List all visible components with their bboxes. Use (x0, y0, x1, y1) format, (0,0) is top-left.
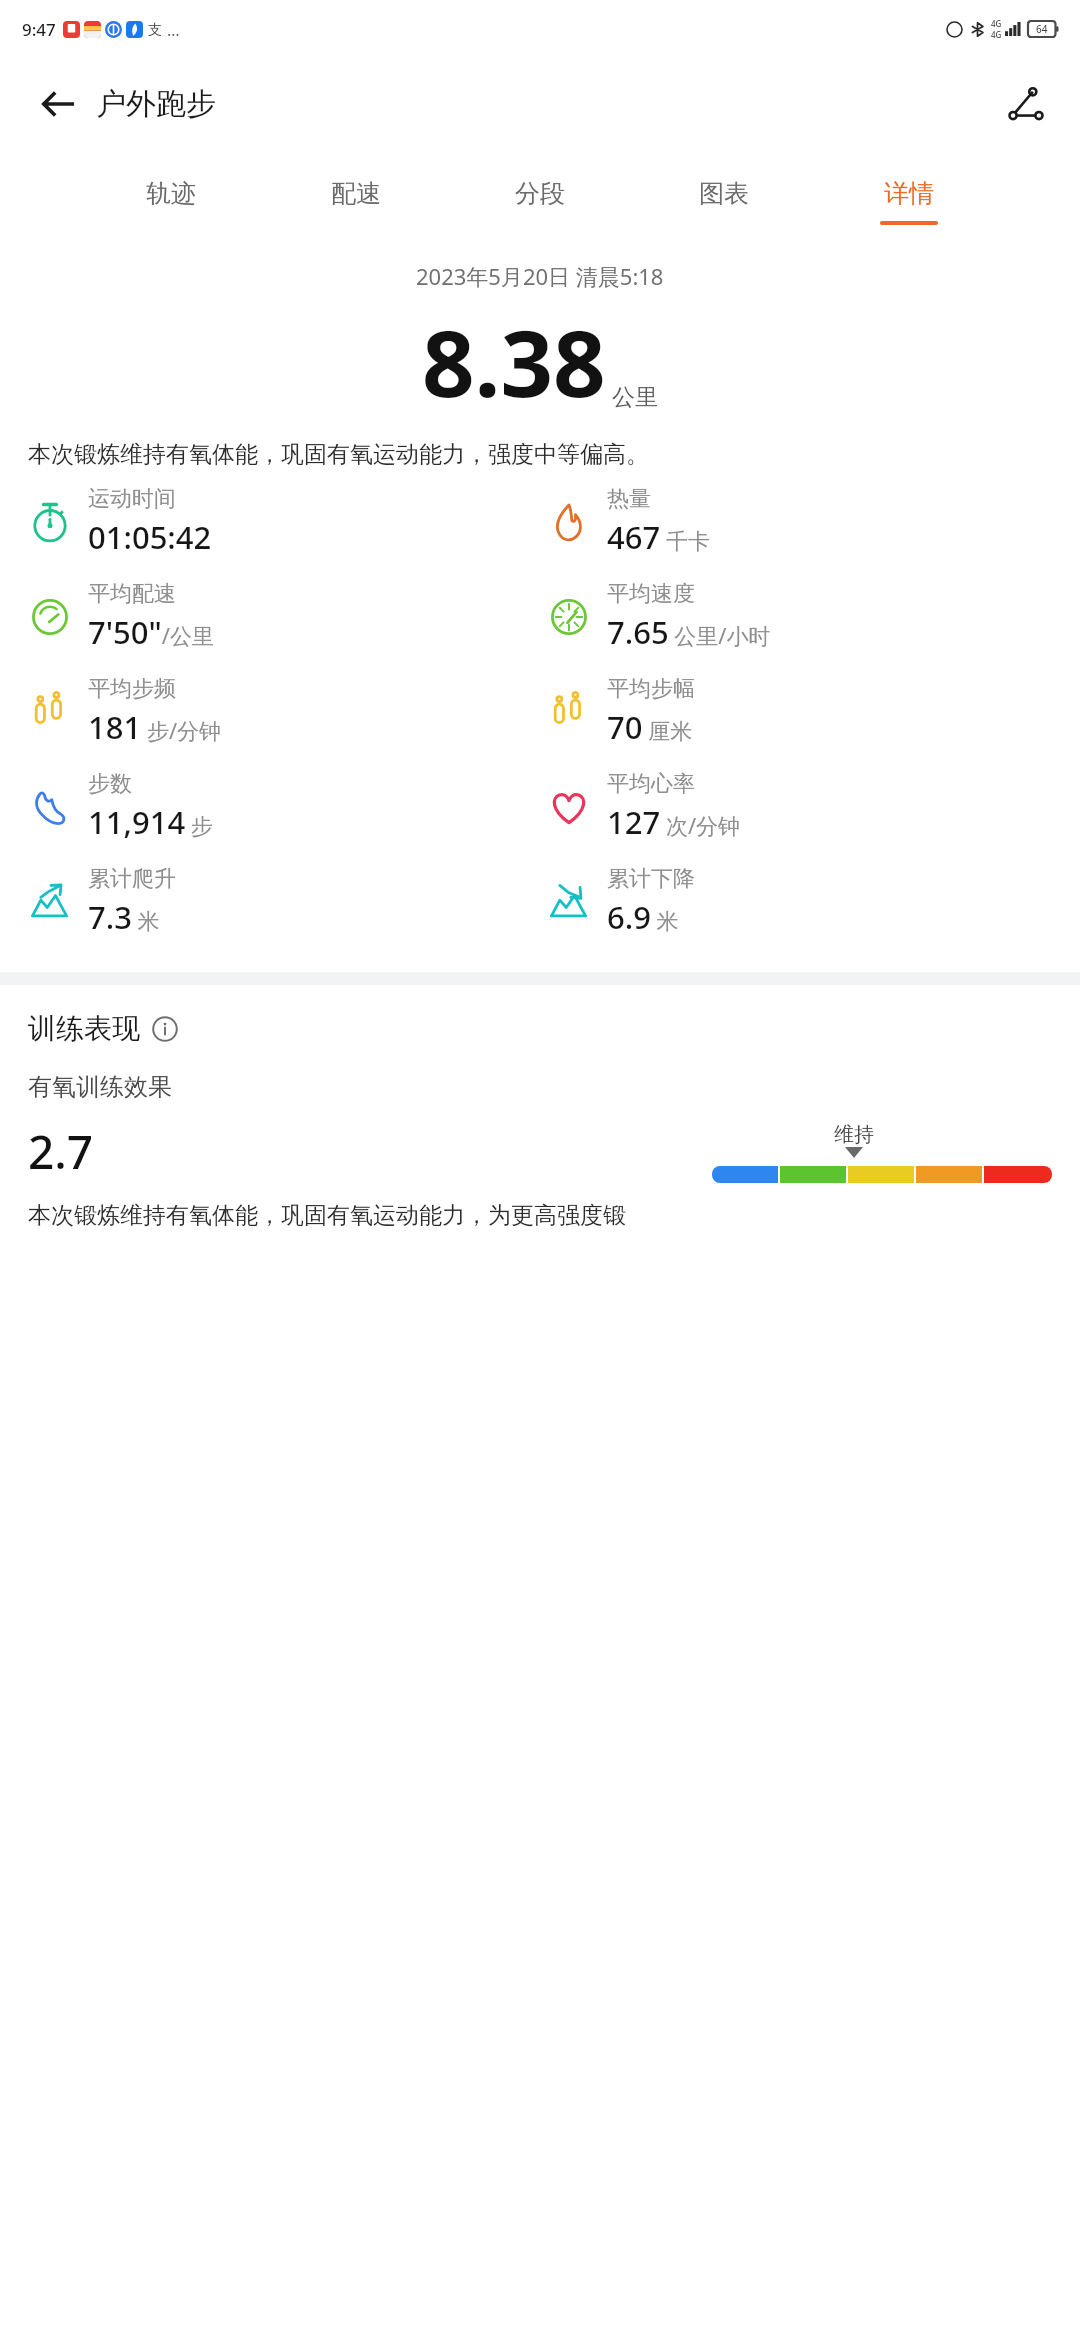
staticText: 平均步幅 (607, 675, 695, 703)
button[interactable]: 分段 (501, 172, 579, 231)
staticText: 配速 (331, 178, 381, 209)
staticText: 有氧训练效果 (28, 1072, 172, 1102)
staticText: 7.65 公里/小时 (607, 611, 771, 653)
button[interactable]: 步数 (24, 768, 543, 845)
button[interactable]: 平均速度 (543, 578, 1062, 655)
staticText: 平均速度 (607, 580, 695, 608)
staticText: 累计爬升 (88, 865, 176, 893)
button[interactable]: 累计爬升 (24, 863, 543, 940)
staticText: 训练表现 (28, 1011, 140, 1046)
button[interactable]: 平均配速 (24, 578, 543, 655)
button[interactable]: 配速 (317, 172, 395, 231)
staticText: 7.3 米 (88, 896, 160, 938)
button[interactable]: 图表 (685, 172, 763, 231)
staticText: … (167, 19, 180, 41)
staticText: 户外跑步 (96, 85, 216, 123)
staticText: 本次锻炼维持有氧体能，巩固有氧运动能力，为更高强度锻 (28, 1201, 626, 1230)
staticText: 运动时间 (88, 485, 176, 513)
staticText: 2.7 (28, 1120, 94, 1183)
staticText: 467 千卡 (607, 516, 710, 558)
button[interactable]: Back (30, 76, 86, 132)
staticText: 图表 (699, 178, 749, 209)
staticText: 维持 (834, 1122, 874, 1147)
button[interactable]: 平均步频 (24, 673, 543, 750)
staticText: 64 (1036, 22, 1048, 36)
staticText: 7'50"/公里 (88, 611, 215, 653)
staticText: 本次锻炼维持有氧体能，巩固有氧运动能力，强度中等偏高。 (28, 440, 1052, 469)
staticText: 70 厘米 (607, 706, 693, 748)
button[interactable]: Share (998, 76, 1054, 132)
staticText: 11,914 步 (88, 801, 213, 843)
staticText: 轨迹 (146, 178, 196, 209)
staticText: 4G (991, 29, 1002, 40)
staticText: 127 次/分钟 (607, 801, 741, 843)
button[interactable]: 轨迹 (132, 172, 210, 231)
staticText: 9:47 (22, 18, 56, 41)
button[interactable]: 运动时间 (24, 483, 543, 560)
button[interactable]: 平均心率 (543, 768, 1062, 845)
staticText: 181 步/分钟 (88, 706, 222, 748)
staticText: 平均配速 (88, 580, 176, 608)
staticText: 6.9 米 (607, 896, 679, 938)
staticText: 累计下降 (607, 865, 695, 893)
staticText: 8.38 (422, 299, 606, 424)
staticText: 分段 (515, 178, 565, 209)
button[interactable]: 平均步幅 (543, 673, 1062, 750)
staticText: 01:05:42 (88, 516, 212, 558)
staticText: 公里 (612, 383, 658, 412)
button[interactable]: 累计下降 (543, 863, 1062, 940)
staticText: 4G (991, 18, 1002, 29)
button[interactable]: 热量 (543, 483, 1062, 560)
staticText: 详情 (884, 178, 934, 209)
other: Info (150, 1014, 180, 1044)
button[interactable]: 详情 (870, 172, 948, 231)
staticText: 支 (148, 21, 162, 39)
staticText: 步数 (88, 770, 132, 798)
button[interactable]: 训练表现 (28, 1011, 180, 1046)
staticText: 平均步频 (88, 675, 176, 703)
staticText: 热量 (607, 485, 651, 513)
staticText: 平均心率 (607, 770, 695, 798)
staticText: 2023年5月20日 清晨5:18 (416, 261, 664, 291)
